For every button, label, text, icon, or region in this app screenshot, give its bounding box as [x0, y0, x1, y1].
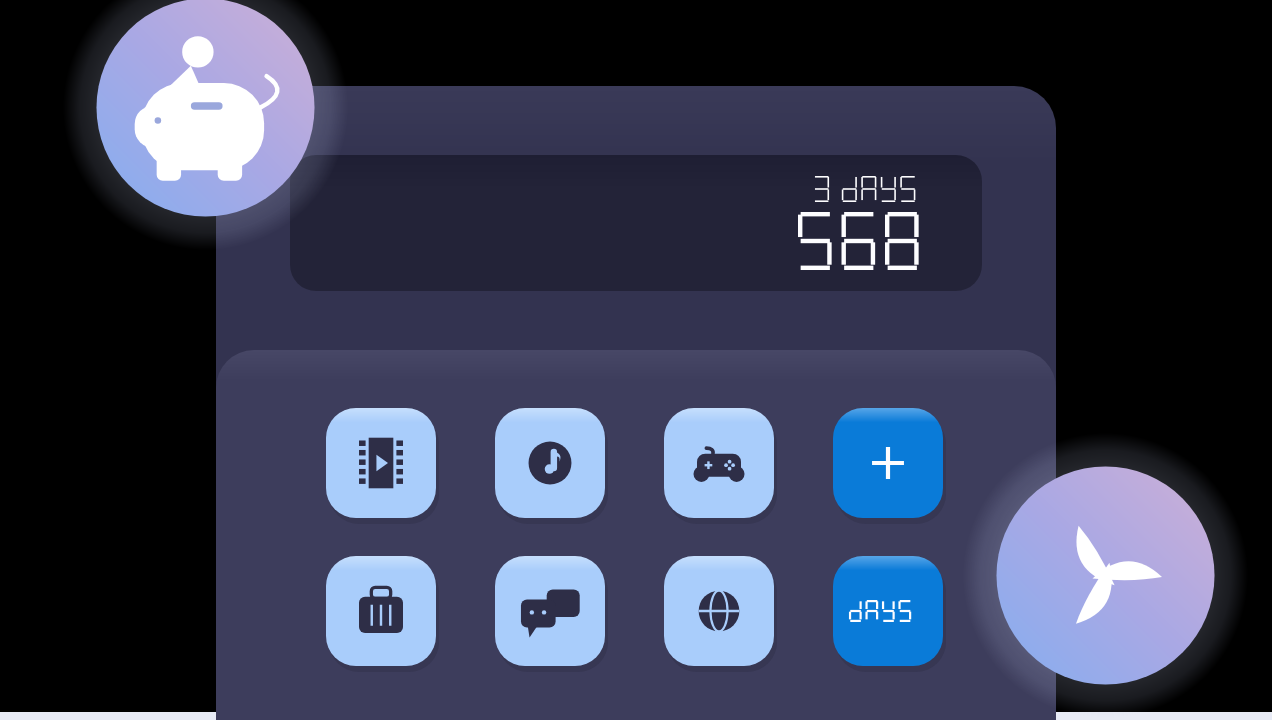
- button[interactable]: Days: [833, 556, 943, 666]
- button[interactable]: Messages: [495, 556, 605, 666]
- button[interactable]: Browser: [664, 556, 774, 666]
- button[interactable]: [63, 0, 348, 250]
- button[interactable]: Travel: [326, 556, 436, 666]
- button[interactable]: [290, 155, 982, 291]
- button[interactable]: Music: [495, 408, 605, 518]
- button[interactable]: Video: [326, 408, 436, 518]
- button[interactable]: Games: [664, 408, 774, 518]
- button[interactable]: [963, 433, 1248, 718]
- button[interactable]: Add: [833, 408, 943, 518]
